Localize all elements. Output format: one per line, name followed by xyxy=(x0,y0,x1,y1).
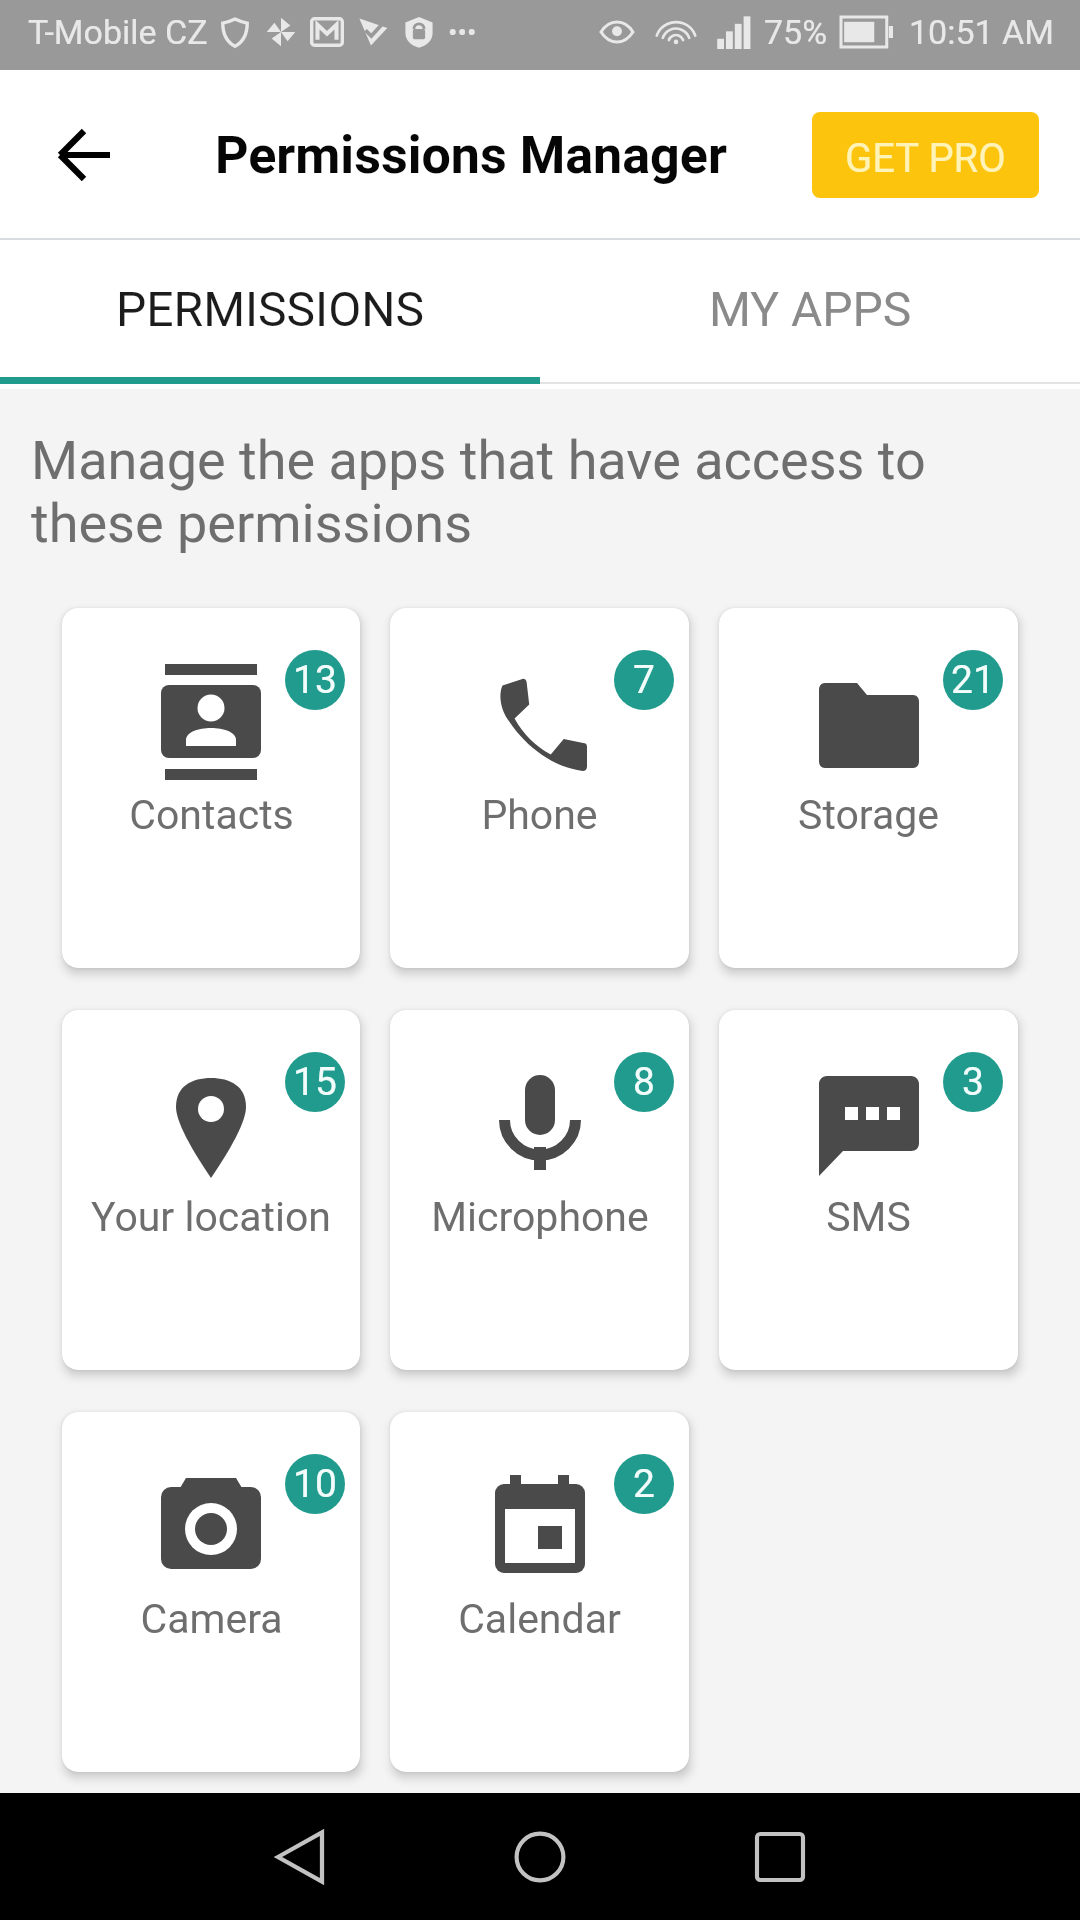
button[interactable]: Your location xyxy=(62,1010,360,1370)
staticText: T-Mobile CZ xyxy=(28,12,208,52)
button[interactable]: Microphone xyxy=(390,1010,689,1370)
staticText: 15 xyxy=(293,1059,337,1105)
staticText: Contacts xyxy=(129,791,294,839)
staticText: 10:51 AM xyxy=(909,12,1054,52)
button[interactable]: Storage xyxy=(719,608,1018,968)
staticText: 2 xyxy=(633,1461,655,1507)
staticText: Storage xyxy=(798,791,939,839)
button[interactable]: Phone xyxy=(390,608,689,968)
staticText: 3 xyxy=(962,1059,984,1105)
staticText: SMS xyxy=(826,1193,911,1241)
staticText: PERMISSIONS xyxy=(116,281,424,337)
button[interactable]: Back xyxy=(42,113,126,197)
staticText: MY APPS xyxy=(709,281,912,337)
staticText: 10 xyxy=(293,1461,337,1507)
staticText: Permissions Manager xyxy=(215,125,727,186)
button[interactable]: Recents xyxy=(700,1793,860,1920)
button[interactable]: Calendar xyxy=(390,1412,689,1772)
staticText: Manage the apps that have access to thes… xyxy=(31,429,926,555)
button[interactable]: Camera xyxy=(62,1412,360,1772)
staticText: 75% xyxy=(764,12,828,52)
staticText: Calendar xyxy=(458,1595,621,1643)
button[interactable]: GET PRO xyxy=(812,112,1039,198)
button[interactable]: System back xyxy=(220,1793,380,1920)
staticText: 7 xyxy=(633,657,655,703)
staticText: ••• xyxy=(448,16,477,49)
button[interactable]: Contacts xyxy=(62,608,360,968)
button[interactable]: Home xyxy=(460,1793,620,1920)
button[interactable]: SMS xyxy=(719,1010,1018,1370)
staticText: Your location xyxy=(91,1193,331,1241)
staticText: 21 xyxy=(951,657,995,703)
button[interactable]: PERMISSIONS xyxy=(0,240,540,377)
staticText: Camera xyxy=(140,1595,283,1643)
button[interactable]: MY APPS xyxy=(540,240,1080,377)
staticText: Microphone xyxy=(431,1193,649,1241)
staticText: 8 xyxy=(633,1059,655,1105)
staticText: GET PRO xyxy=(845,135,1006,182)
staticText: Phone xyxy=(481,791,598,839)
staticText: 13 xyxy=(293,657,337,703)
